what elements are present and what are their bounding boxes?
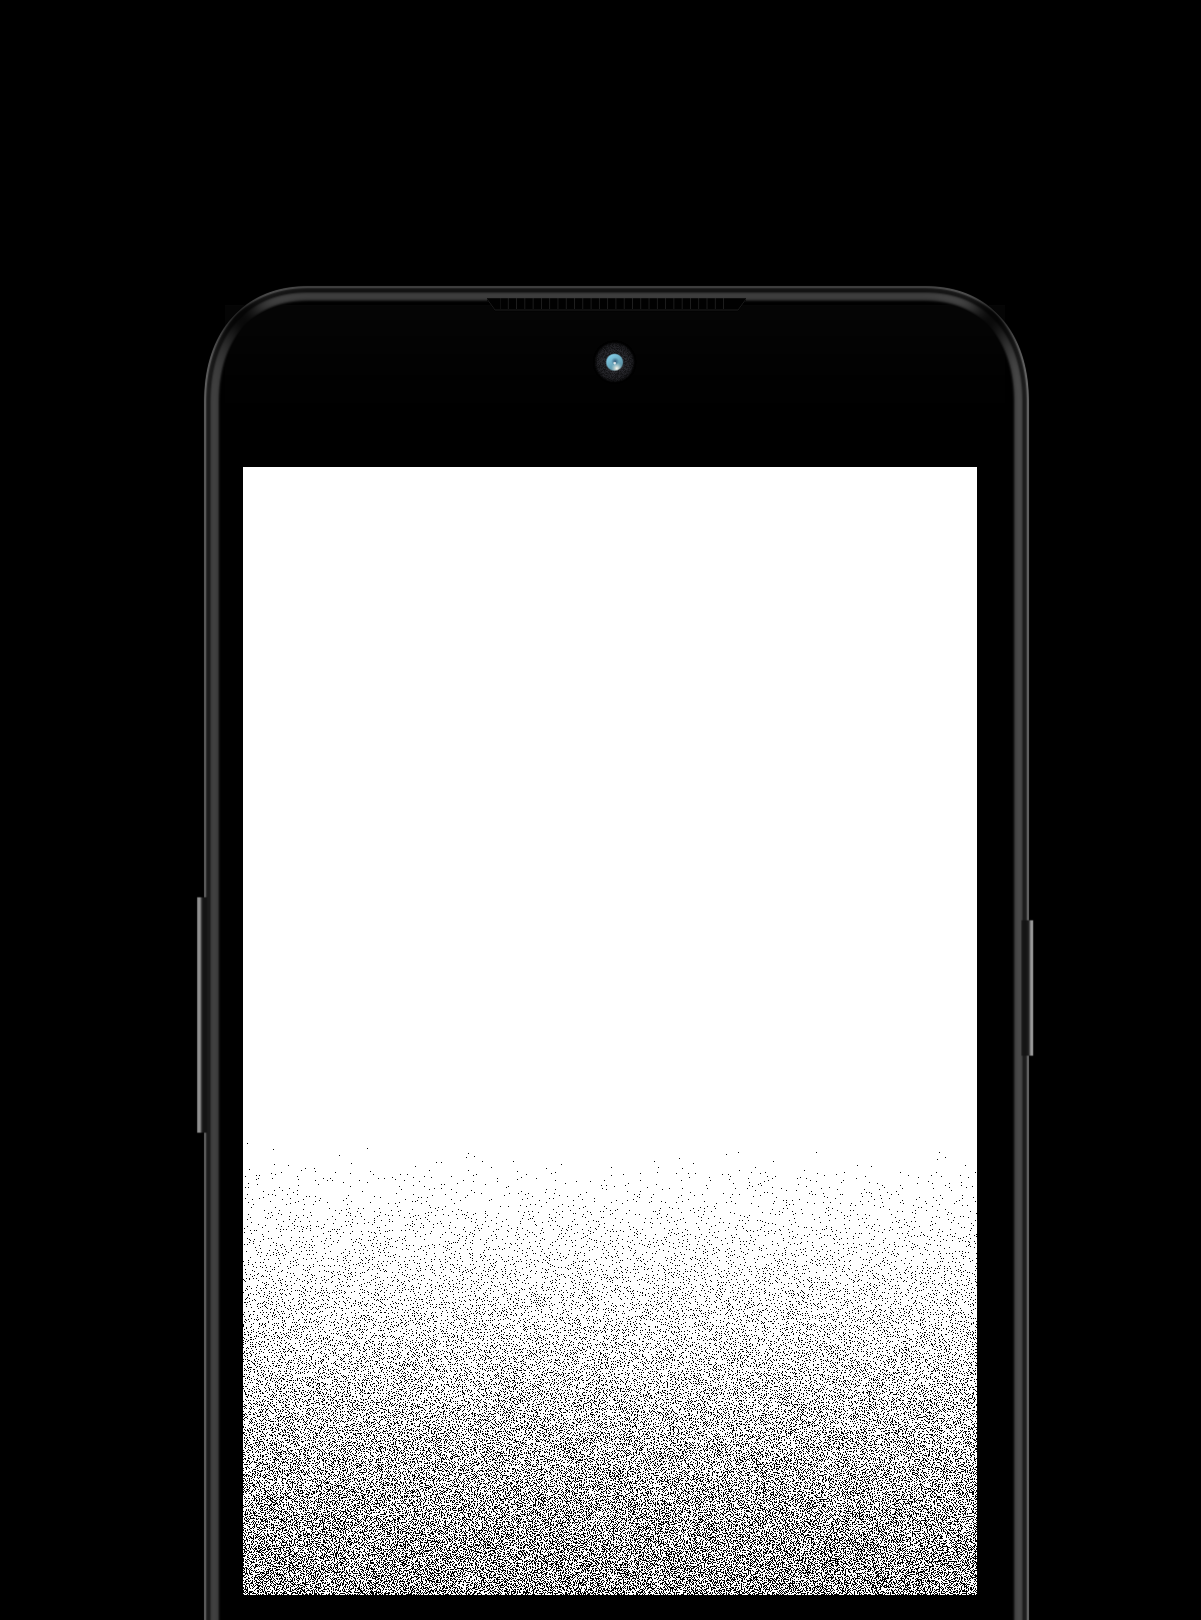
- button[interactable]: Phone device preview: [0, 0, 1201, 1620]
